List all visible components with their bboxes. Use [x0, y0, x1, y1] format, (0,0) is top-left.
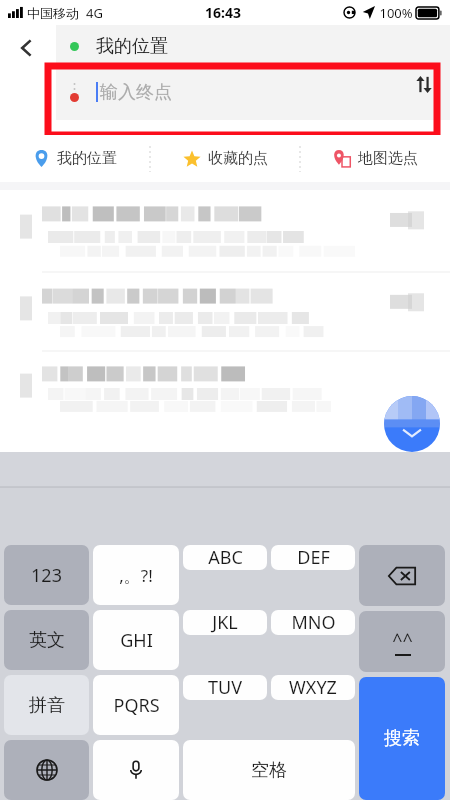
staticText: 搜索 [384, 727, 420, 750]
button[interactable]: 我的位置 [0, 135, 150, 182]
button[interactable]: 123 [4, 545, 89, 605]
staticText: PQRS [113, 693, 160, 718]
staticText: GHI [120, 628, 153, 653]
button[interactable]: Switch keyboard [4, 740, 89, 800]
button[interactable]: Swap origin and destination [406, 67, 440, 101]
button[interactable]: DEF [271, 545, 355, 570]
staticText: DEF [297, 545, 330, 570]
button[interactable] [0, 352, 450, 424]
button[interactable]: GHI [93, 610, 179, 670]
button[interactable]: 拼音 [4, 675, 89, 735]
button[interactable] [0, 273, 450, 351]
button[interactable]: 收藏的点 [151, 135, 300, 182]
button[interactable]: ,。?! [93, 545, 179, 605]
button[interactable]: 我的位置 [56, 25, 450, 67]
staticText: 123 [31, 563, 62, 588]
button[interactable]: ABC [183, 545, 267, 570]
staticText: WXYZ [289, 675, 337, 700]
button[interactable]: JKL [183, 610, 267, 635]
staticText: ,。?! [119, 564, 153, 587]
button[interactable]: My location [384, 396, 440, 452]
button[interactable]: Delete [359, 545, 445, 606]
button[interactable]: Back [4, 25, 50, 71]
staticText: 我的位置 [57, 149, 117, 168]
staticText: 我的位置 [96, 35, 168, 58]
staticText: TUV [208, 675, 242, 700]
staticText: 中国移动 [27, 5, 79, 21]
button[interactable]: 地图选点 [301, 135, 450, 182]
staticText: 16:43 [205, 3, 241, 22]
button[interactable]: PQRS [93, 675, 179, 735]
button[interactable] [0, 190, 450, 272]
staticText: 100% [379, 4, 413, 22]
staticText: 地图选点 [358, 149, 418, 168]
staticText: 4G [86, 4, 103, 22]
staticText: MNO [291, 610, 336, 635]
button[interactable]: 空格 [183, 740, 355, 800]
staticText: ABC [208, 545, 243, 570]
button[interactable]: ^^ [359, 611, 445, 672]
button[interactable]: 搜索 [359, 677, 445, 800]
staticText: 输入终点 [100, 81, 172, 104]
staticText: 拼音 [29, 694, 65, 717]
staticText: 英文 [29, 629, 65, 652]
staticText: 空格 [251, 759, 287, 782]
button[interactable]: 英文 [4, 610, 89, 670]
staticText: JKL [212, 610, 238, 635]
button[interactable]: MNO [271, 610, 355, 635]
staticText: ^^ [392, 628, 413, 653]
button[interactable]: Voice input [93, 740, 179, 800]
button[interactable]: TUV [183, 675, 267, 700]
button[interactable]: WXYZ [271, 675, 355, 700]
staticText: 收藏的点 [208, 149, 268, 168]
button[interactable]: 输入终点 [56, 67, 450, 117]
